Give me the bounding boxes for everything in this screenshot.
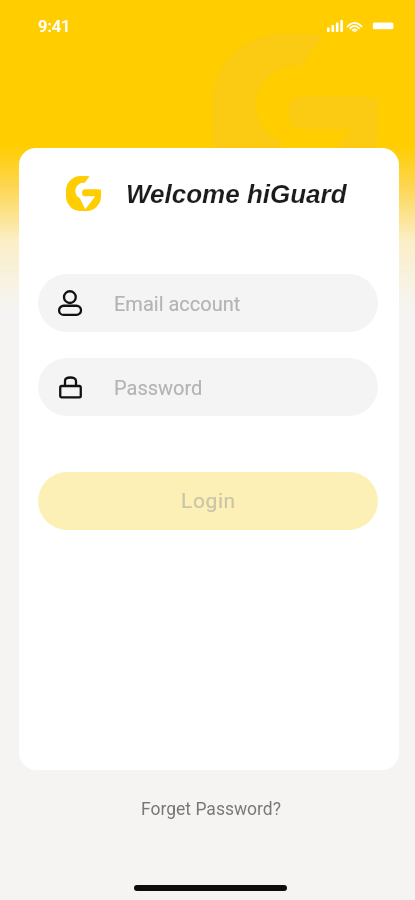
button[interactable]: Email account — [38, 274, 378, 332]
staticText: Password — [114, 376, 203, 399]
staticText: Forget Password? — [141, 799, 281, 820]
staticText: Login — [181, 489, 236, 514]
staticText: Email account — [114, 292, 241, 315]
button[interactable]: Password — [38, 358, 378, 416]
other: Signal, wifi and battery status — [327, 20, 395, 32]
staticText: 9:41 — [38, 17, 71, 36]
button[interactable]: Forget Password? — [127, 792, 295, 827]
button[interactable]: Login — [38, 472, 378, 530]
staticText: Welcome hiGuard — [126, 179, 347, 208]
